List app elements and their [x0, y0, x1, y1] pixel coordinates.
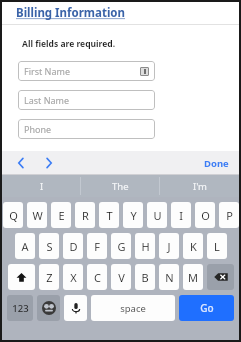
staticText: E	[58, 208, 65, 223]
staticText: V	[118, 270, 125, 285]
button[interactable]: I	[171, 202, 191, 228]
staticText: Done	[204, 157, 229, 170]
button[interactable]: C	[87, 264, 107, 290]
button[interactable]: J	[159, 233, 179, 259]
button[interactable]: Y	[123, 202, 143, 228]
staticText: C	[94, 270, 101, 285]
staticText: I'm	[193, 180, 207, 193]
button[interactable]: Shift	[8, 264, 35, 290]
button[interactable]: T	[99, 202, 119, 228]
button[interactable]: I'm	[160, 175, 239, 197]
button[interactable]: Emoji	[37, 295, 60, 321]
button[interactable]: Dictation	[64, 295, 87, 321]
button[interactable]: space	[91, 295, 175, 321]
button[interactable]: R	[75, 202, 95, 228]
staticText: Q	[9, 208, 18, 223]
staticText: space	[120, 302, 146, 315]
button[interactable]: Done	[204, 157, 229, 170]
button[interactable]: P	[219, 202, 239, 228]
button[interactable]: W	[27, 202, 47, 228]
staticText: R	[82, 208, 89, 223]
staticText: I	[40, 180, 44, 193]
staticText: Z	[46, 270, 53, 285]
staticText: First Name	[24, 65, 70, 77]
staticText: D	[69, 239, 78, 254]
staticText: M	[188, 270, 198, 285]
button[interactable]: Phone	[18, 119, 155, 139]
button[interactable]: Q	[3, 202, 23, 228]
staticText: H	[141, 239, 150, 254]
staticText: I	[179, 208, 183, 223]
button[interactable]: Last Name	[18, 90, 155, 110]
staticText: All fields are required.	[22, 38, 116, 50]
staticText: X	[70, 270, 77, 285]
staticText: Phone	[24, 123, 52, 135]
button[interactable]: A	[15, 233, 35, 259]
staticText: U	[153, 208, 162, 223]
staticText: J	[167, 239, 171, 254]
button[interactable]: K	[183, 233, 203, 259]
staticText: O	[201, 208, 210, 223]
staticText: B	[141, 270, 149, 285]
button[interactable]: H	[135, 233, 155, 259]
staticText: K	[190, 239, 197, 254]
button[interactable]: X	[63, 264, 83, 290]
button[interactable]: S	[39, 233, 59, 259]
staticText: 123	[12, 302, 29, 315]
button[interactable]: G	[111, 233, 131, 259]
button[interactable]: M	[183, 264, 203, 290]
button[interactable]: Z	[39, 264, 59, 290]
button[interactable]: U	[147, 202, 167, 228]
button[interactable]: Billing Information	[2, 2, 239, 24]
staticText: Go	[200, 301, 214, 315]
button[interactable]: F	[87, 233, 107, 259]
staticText: Y	[130, 208, 137, 223]
button[interactable]: Previous field	[11, 153, 31, 173]
staticText: S	[46, 239, 53, 254]
staticText: A	[21, 239, 29, 254]
staticText: N	[165, 270, 174, 285]
button[interactable]: L	[207, 233, 227, 259]
staticText: The	[112, 180, 129, 193]
staticText: G	[117, 239, 126, 254]
staticText: Last Name	[24, 94, 70, 106]
button[interactable]: V	[111, 264, 131, 290]
staticText: F	[94, 239, 100, 254]
staticText: P	[226, 208, 233, 223]
button[interactable]: Go	[179, 295, 234, 321]
button[interactable]: B	[135, 264, 155, 290]
staticText: L	[214, 239, 220, 254]
button[interactable]: 123	[7, 295, 33, 321]
button[interactable]: N	[159, 264, 179, 290]
button[interactable]: First Name	[18, 61, 155, 81]
staticText: W	[32, 208, 43, 223]
button[interactable]: Next field	[39, 153, 59, 173]
button[interactable]: O	[195, 202, 215, 228]
staticText: T	[106, 208, 113, 223]
button[interactable]: I	[2, 175, 81, 197]
button[interactable]: Backspace	[207, 264, 234, 290]
staticText: Billing Information	[16, 5, 126, 21]
button[interactable]: Contacts	[140, 67, 149, 76]
button[interactable]: D	[63, 233, 83, 259]
button[interactable]: E	[51, 202, 71, 228]
button[interactable]: The	[81, 175, 160, 197]
